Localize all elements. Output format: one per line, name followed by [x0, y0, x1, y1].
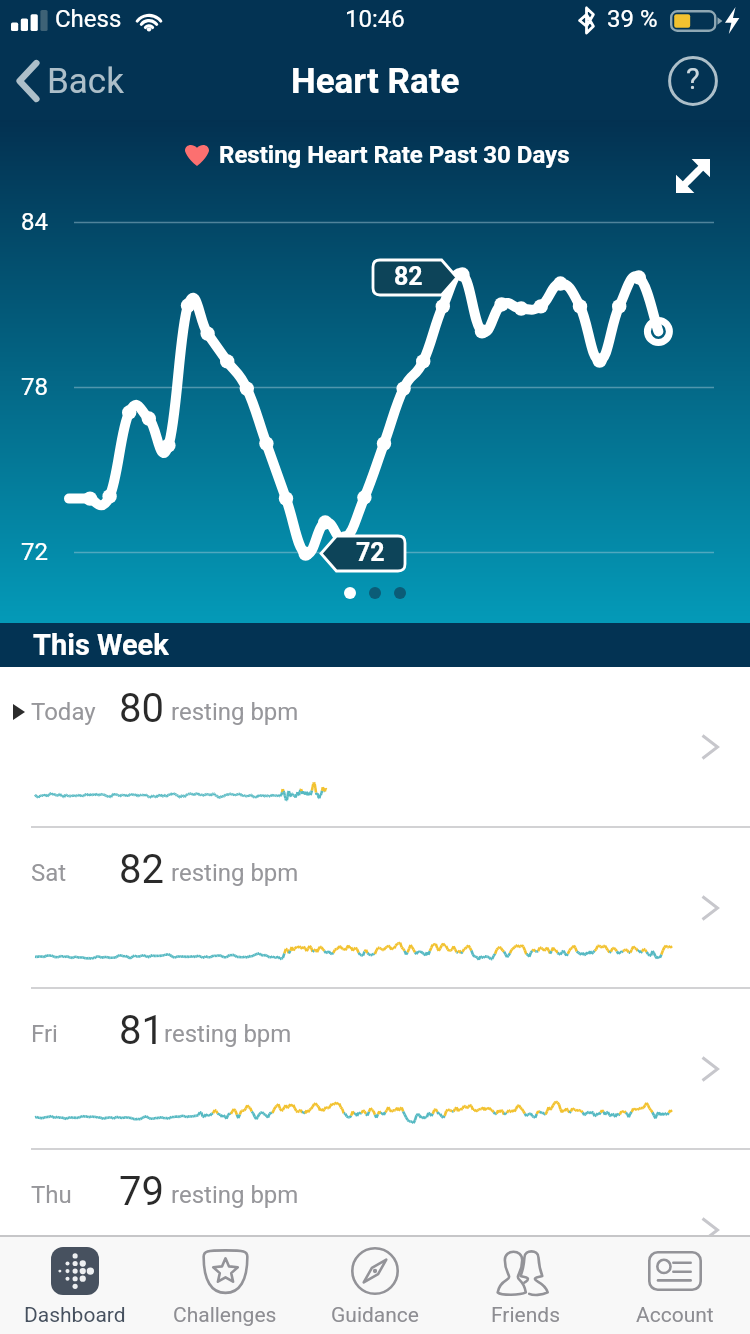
button[interactable]: Thu [0, 1150, 750, 1235]
staticText: ? [686, 62, 700, 96]
staticText: Back [47, 61, 124, 102]
button[interactable]: Dashboard [0, 1237, 150, 1334]
staticText: 82 [394, 262, 423, 291]
staticText: Fri [31, 1020, 58, 1048]
staticText: Sat [31, 859, 67, 887]
button[interactable]: Back [14, 42, 124, 120]
button[interactable]: Sat [0, 828, 750, 987]
staticText: Friends [491, 1303, 560, 1328]
staticText: Today [31, 698, 96, 726]
button[interactable]: Fri [0, 989, 750, 1148]
staticText: Guidance [331, 1303, 419, 1328]
button[interactable]: Guidance [300, 1237, 450, 1334]
button[interactable]: Challenges [150, 1237, 300, 1334]
staticText: resting bpm [164, 1020, 292, 1048]
staticText: Account [636, 1303, 714, 1328]
staticText: 39 % [607, 5, 658, 33]
staticText: Heart Rate [291, 61, 460, 102]
button[interactable]: Account [600, 1237, 750, 1334]
staticText: Chess [55, 5, 122, 33]
button[interactable]: Expand chart [665, 148, 721, 204]
staticText: 84 [21, 208, 48, 236]
staticText: Resting Heart Rate Past 30 Days [219, 141, 570, 169]
button[interactable]: Friends [450, 1237, 600, 1334]
staticText: resting bpm [171, 1181, 299, 1209]
staticText: Dashboard [24, 1303, 126, 1328]
staticText: 78 [21, 373, 48, 401]
staticText: 82 [119, 846, 164, 893]
staticText: 81 [119, 1007, 164, 1054]
staticText: Thu [31, 1181, 72, 1209]
staticText: resting bpm [171, 859, 299, 887]
staticText: 80 [119, 685, 164, 732]
staticText: 72 [21, 538, 48, 566]
button[interactable]: Today [0, 667, 750, 826]
staticText: This Week [33, 628, 169, 662]
button[interactable]: Help [668, 56, 718, 106]
staticText: resting bpm [171, 698, 299, 726]
staticText: 79 [119, 1168, 164, 1215]
staticText: 72 [356, 538, 385, 567]
staticText: Challenges [173, 1303, 277, 1328]
staticText: 10:46 [345, 5, 405, 33]
